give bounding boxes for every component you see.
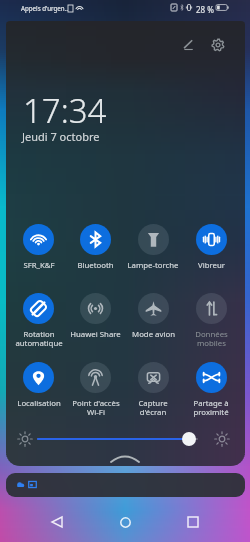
button[interactable]: Données mobiles bbox=[182, 293, 240, 362]
button[interactable]: Rotation automatique bbox=[10, 293, 67, 362]
button[interactable]: Settings bbox=[207, 34, 229, 56]
staticText: 17:34 bbox=[23, 88, 107, 133]
staticText: SFR_K&F bbox=[23, 260, 55, 271]
staticText: Rotation automatique bbox=[15, 329, 63, 349]
button[interactable] bbox=[0, 429, 250, 449]
staticText: Jeudi 7 octobre bbox=[22, 129, 100, 144]
staticText: Localisation bbox=[17, 398, 61, 409]
button[interactable]: Capture d'écran bbox=[124, 362, 182, 431]
staticText: Capture d'écran bbox=[138, 398, 168, 418]
button[interactable] bbox=[6, 473, 245, 497]
staticText: 28 % bbox=[196, 4, 214, 15]
button[interactable]: Partage à proximité bbox=[182, 362, 240, 431]
button[interactable]: Edit bbox=[177, 34, 199, 56]
staticText: Bluetooth bbox=[77, 260, 114, 271]
staticText: Point d'accès Wi-Fi bbox=[72, 398, 120, 418]
staticText: Lampe-torche bbox=[127, 260, 179, 271]
staticText: Huawei Share bbox=[70, 329, 121, 340]
button[interactable]: Bluetooth bbox=[67, 224, 124, 293]
button[interactable]: Lampe-torche bbox=[124, 224, 182, 293]
staticText: Partage à proximité bbox=[193, 398, 229, 418]
staticText: Mode avion bbox=[132, 329, 175, 340]
staticText: Données mobiles bbox=[195, 329, 228, 349]
staticText: Vibreur bbox=[198, 260, 225, 271]
button[interactable]: Vibreur bbox=[182, 224, 240, 293]
button[interactable]: Localisation bbox=[10, 362, 67, 431]
button[interactable]: Home bbox=[107, 504, 143, 540]
button[interactable]: Huawei Share bbox=[67, 293, 124, 362]
button[interactable]: SFR_K&F bbox=[10, 224, 67, 293]
button[interactable]: Mode avion bbox=[124, 293, 182, 362]
button[interactable]: Back bbox=[39, 504, 75, 540]
button[interactable]: Recents bbox=[175, 504, 211, 540]
button[interactable]: Point d'accès Wi-Fi bbox=[67, 362, 124, 431]
staticText: Appels d'urgen.. bbox=[21, 4, 68, 12]
